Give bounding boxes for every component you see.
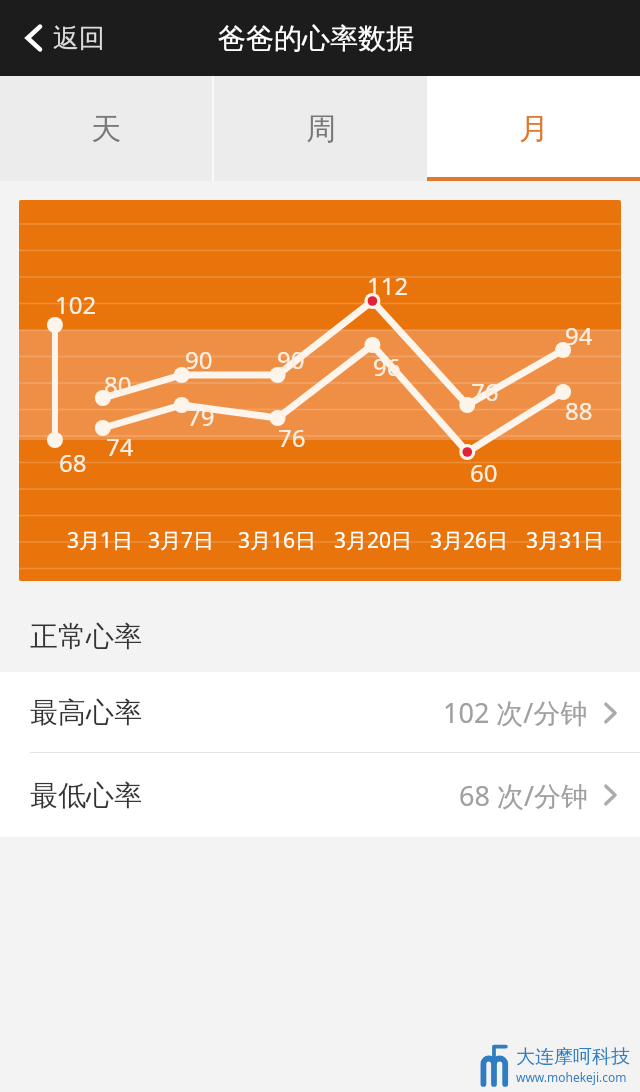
staticText: 大连摩呵科技	[516, 1045, 630, 1069]
staticText: 112	[367, 269, 409, 302]
staticText: 94	[565, 319, 593, 352]
staticText: 正常心率	[30, 619, 142, 654]
button[interactable]: 最低心率	[0, 753, 640, 837]
staticText: 3月31日	[520, 526, 610, 555]
staticText: 天	[91, 110, 121, 148]
staticText: 88	[565, 394, 593, 427]
staticText: 返回	[53, 22, 105, 55]
button[interactable]: 月	[427, 76, 640, 181]
staticText: 80	[104, 368, 132, 401]
staticText: 3月16日	[232, 526, 322, 555]
staticText: 月	[519, 110, 549, 148]
staticText: 周	[306, 110, 336, 148]
staticText: 3月20日	[328, 526, 418, 555]
staticText: 96	[373, 350, 401, 383]
staticText: 79	[187, 400, 215, 433]
staticText: 90	[185, 343, 213, 376]
staticText: 爸爸的心率数据	[218, 21, 414, 56]
staticText: 最低心率	[30, 778, 142, 813]
button[interactable]: 最高心率	[0, 672, 640, 753]
staticText: 90	[277, 343, 305, 376]
staticText: www.mohekeji.com	[516, 1069, 627, 1085]
staticText: 76	[471, 375, 499, 408]
staticText: 68	[59, 446, 87, 479]
staticText: 3月26日	[424, 526, 514, 555]
staticText: 3月7日	[136, 526, 226, 555]
button[interactable]: 返回	[0, 0, 123, 76]
staticText: 60	[470, 456, 498, 489]
staticText: 76	[278, 421, 306, 454]
staticText: 最高心率	[30, 695, 142, 730]
staticText: 74	[106, 430, 134, 463]
button[interactable]: 周	[214, 76, 427, 181]
staticText: 3月1日	[55, 526, 145, 555]
button[interactable]: 天	[0, 76, 212, 181]
staticText: 68 次/分钟	[459, 777, 588, 814]
staticText: 102	[55, 288, 97, 321]
staticText: 102 次/分钟	[443, 694, 588, 731]
